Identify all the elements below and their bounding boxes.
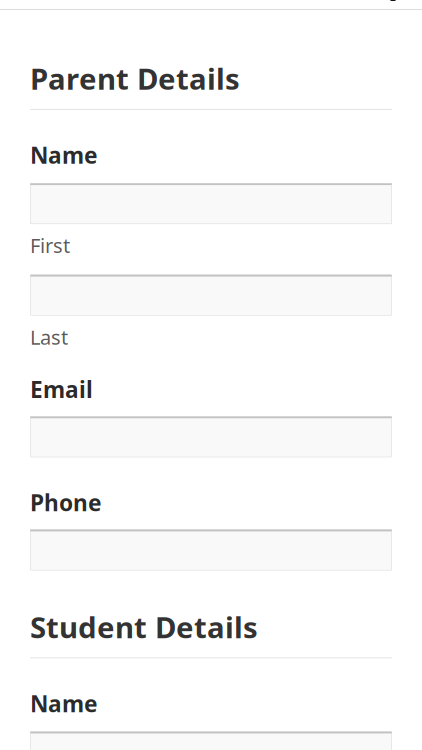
staticText: Name bbox=[30, 140, 98, 170]
staticText: Student Details bbox=[30, 607, 258, 646]
button[interactable] bbox=[30, 275, 392, 316]
button[interactable] bbox=[30, 183, 392, 224]
staticText: Parent Details bbox=[30, 59, 240, 98]
staticText: First bbox=[30, 232, 70, 259]
button[interactable]: Notifications bbox=[371, 0, 415, 9]
button[interactable] bbox=[30, 529, 392, 570]
button[interactable] bbox=[30, 731, 392, 750]
staticText: Last bbox=[30, 324, 68, 350]
staticText: Name bbox=[30, 688, 98, 718]
staticText: Email bbox=[30, 374, 93, 404]
staticText: Phone bbox=[30, 487, 102, 517]
button[interactable] bbox=[30, 416, 392, 457]
